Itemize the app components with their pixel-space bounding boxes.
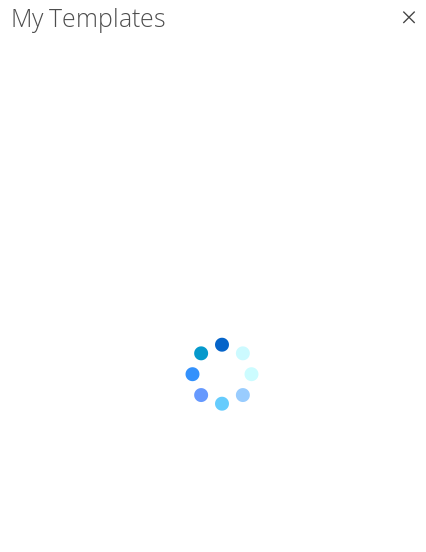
staticText: My Templates (11, 1, 166, 34)
button[interactable]: Close (396, 4, 422, 30)
